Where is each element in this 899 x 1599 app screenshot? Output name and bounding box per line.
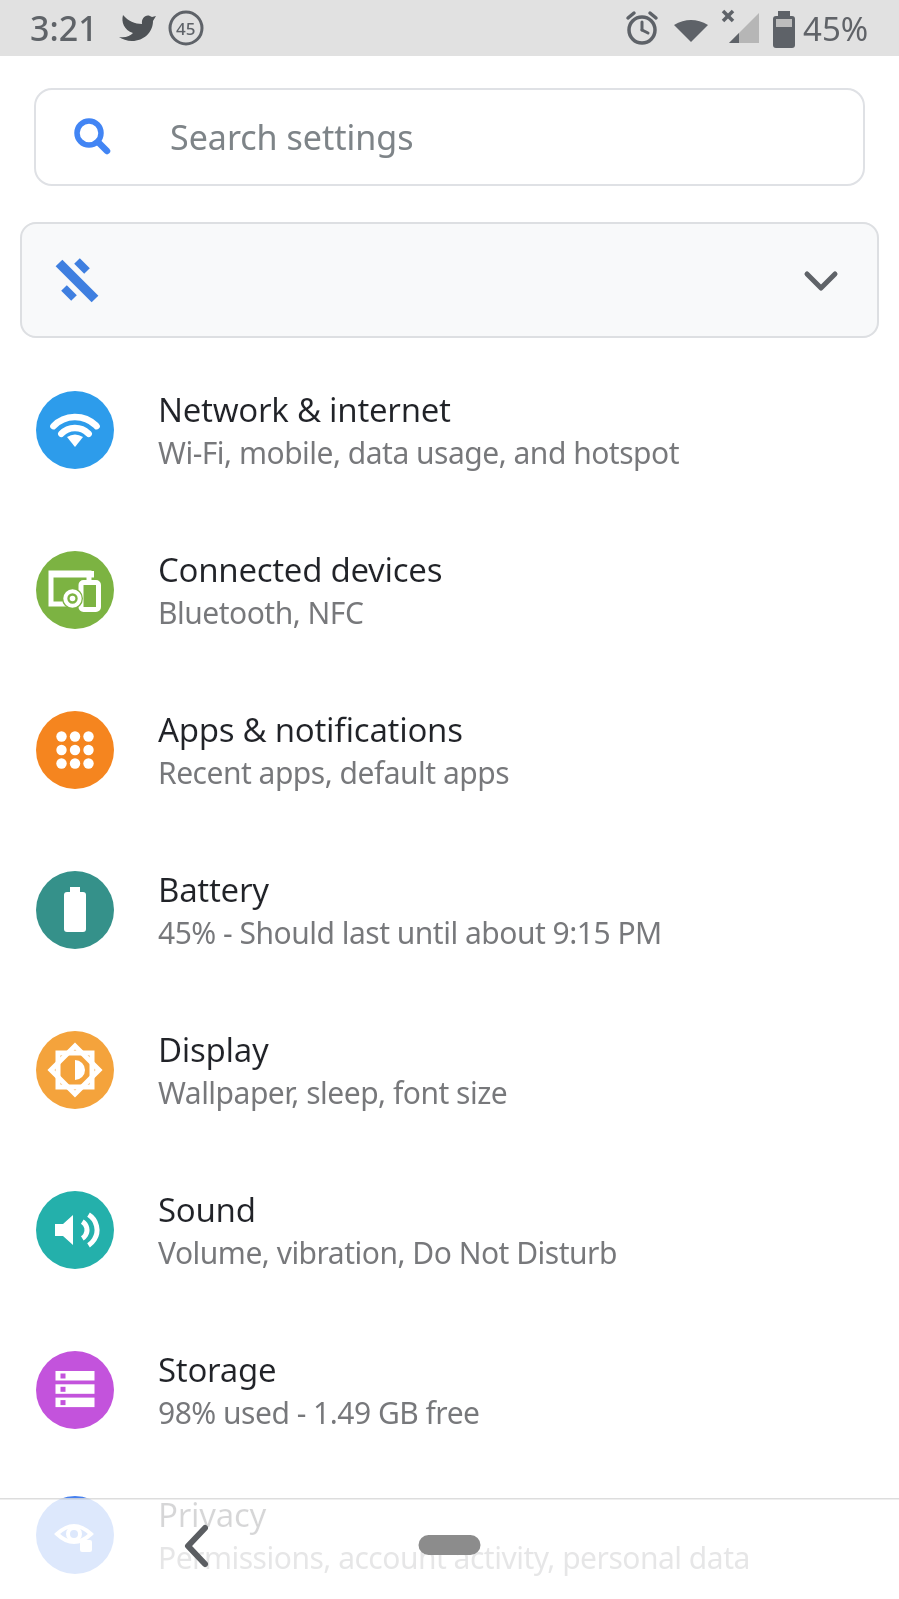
- button[interactable]: Connected devices: [0, 510, 899, 670]
- button[interactable]: Apps & notifications: [0, 670, 899, 830]
- staticText: 45: [176, 17, 196, 40]
- staticText: Network & internet: [158, 387, 451, 432]
- button[interactable]: [400, 1525, 500, 1565]
- staticText: Permissions, account activity, personal …: [158, 1537, 750, 1578]
- staticText: Apps & notifications: [158, 707, 463, 752]
- staticText: Privacy: [158, 1492, 266, 1537]
- staticText: Volume, vibration, Do Not Disturb: [158, 1232, 617, 1273]
- staticText: Recent apps, default apps: [158, 752, 510, 793]
- button[interactable]: [168, 1518, 224, 1574]
- staticText: Sound: [158, 1187, 256, 1232]
- staticText: Connected devices: [158, 547, 443, 592]
- staticText: Search settings: [170, 114, 414, 160]
- staticText: Display: [158, 1027, 269, 1072]
- button[interactable]: Battery: [0, 830, 899, 990]
- staticText: Storage: [158, 1347, 277, 1392]
- staticText: 3:21: [30, 5, 98, 51]
- button[interactable]: Network & internet: [0, 350, 899, 510]
- staticText: 98% used - 1.49 GB free: [158, 1392, 480, 1433]
- staticText: Battery: [158, 867, 269, 912]
- staticText: Wi-Fi, mobile, data usage, and hotspot: [158, 432, 679, 473]
- button[interactable]: Storage: [0, 1310, 899, 1470]
- button[interactable]: [20, 222, 879, 338]
- staticText: 45% - Should last until about 9:15 PM: [158, 912, 662, 953]
- staticText: Wallpaper, sleep, font size: [158, 1072, 508, 1113]
- button[interactable]: Sound: [0, 1150, 899, 1310]
- button[interactable]: Display: [0, 990, 899, 1150]
- staticText: Bluetooth, NFC: [158, 592, 364, 633]
- button[interactable]: Search settings: [34, 88, 865, 186]
- staticText: 45%: [803, 6, 869, 51]
- button[interactable]: Privacy: [0, 1470, 899, 1599]
